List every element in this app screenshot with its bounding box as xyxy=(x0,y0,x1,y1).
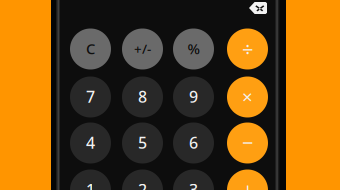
button[interactable]: ÷ xyxy=(227,28,268,69)
staticText: 8 xyxy=(138,86,147,107)
staticText: ÷ xyxy=(242,35,253,62)
staticText: 1 xyxy=(86,179,95,190)
button[interactable]: C xyxy=(70,28,111,69)
button[interactable]: × xyxy=(227,76,268,117)
button[interactable]: 2 xyxy=(122,169,163,190)
button[interactable]: 8 xyxy=(122,76,163,117)
staticText: C xyxy=(86,39,95,58)
staticText: × xyxy=(242,84,253,109)
staticText: 5 xyxy=(138,132,147,153)
staticText: 6 xyxy=(189,132,198,153)
button[interactable]: 9 xyxy=(173,76,214,117)
staticText: 4 xyxy=(86,132,95,153)
button[interactable]: +/- xyxy=(122,28,163,69)
button[interactable]: 7 xyxy=(70,76,111,117)
button[interactable]: − xyxy=(227,122,268,163)
button[interactable]: 3 xyxy=(173,169,214,190)
button[interactable]: 6 xyxy=(173,122,214,163)
button[interactable]: 1 xyxy=(70,169,111,190)
staticText: +/- xyxy=(134,40,151,57)
button[interactable]: % xyxy=(173,28,214,69)
button[interactable]: 5 xyxy=(122,122,163,163)
staticText: 7 xyxy=(86,86,95,107)
button[interactable]: 4 xyxy=(70,122,111,163)
button[interactable]: Delete xyxy=(245,0,271,18)
staticText: 3 xyxy=(189,179,198,190)
button[interactable]: + xyxy=(227,169,268,190)
staticText: % xyxy=(187,39,199,58)
staticText: 2 xyxy=(138,179,147,190)
staticText: + xyxy=(242,176,253,190)
staticText: 9 xyxy=(189,86,198,107)
staticText: − xyxy=(242,129,253,156)
